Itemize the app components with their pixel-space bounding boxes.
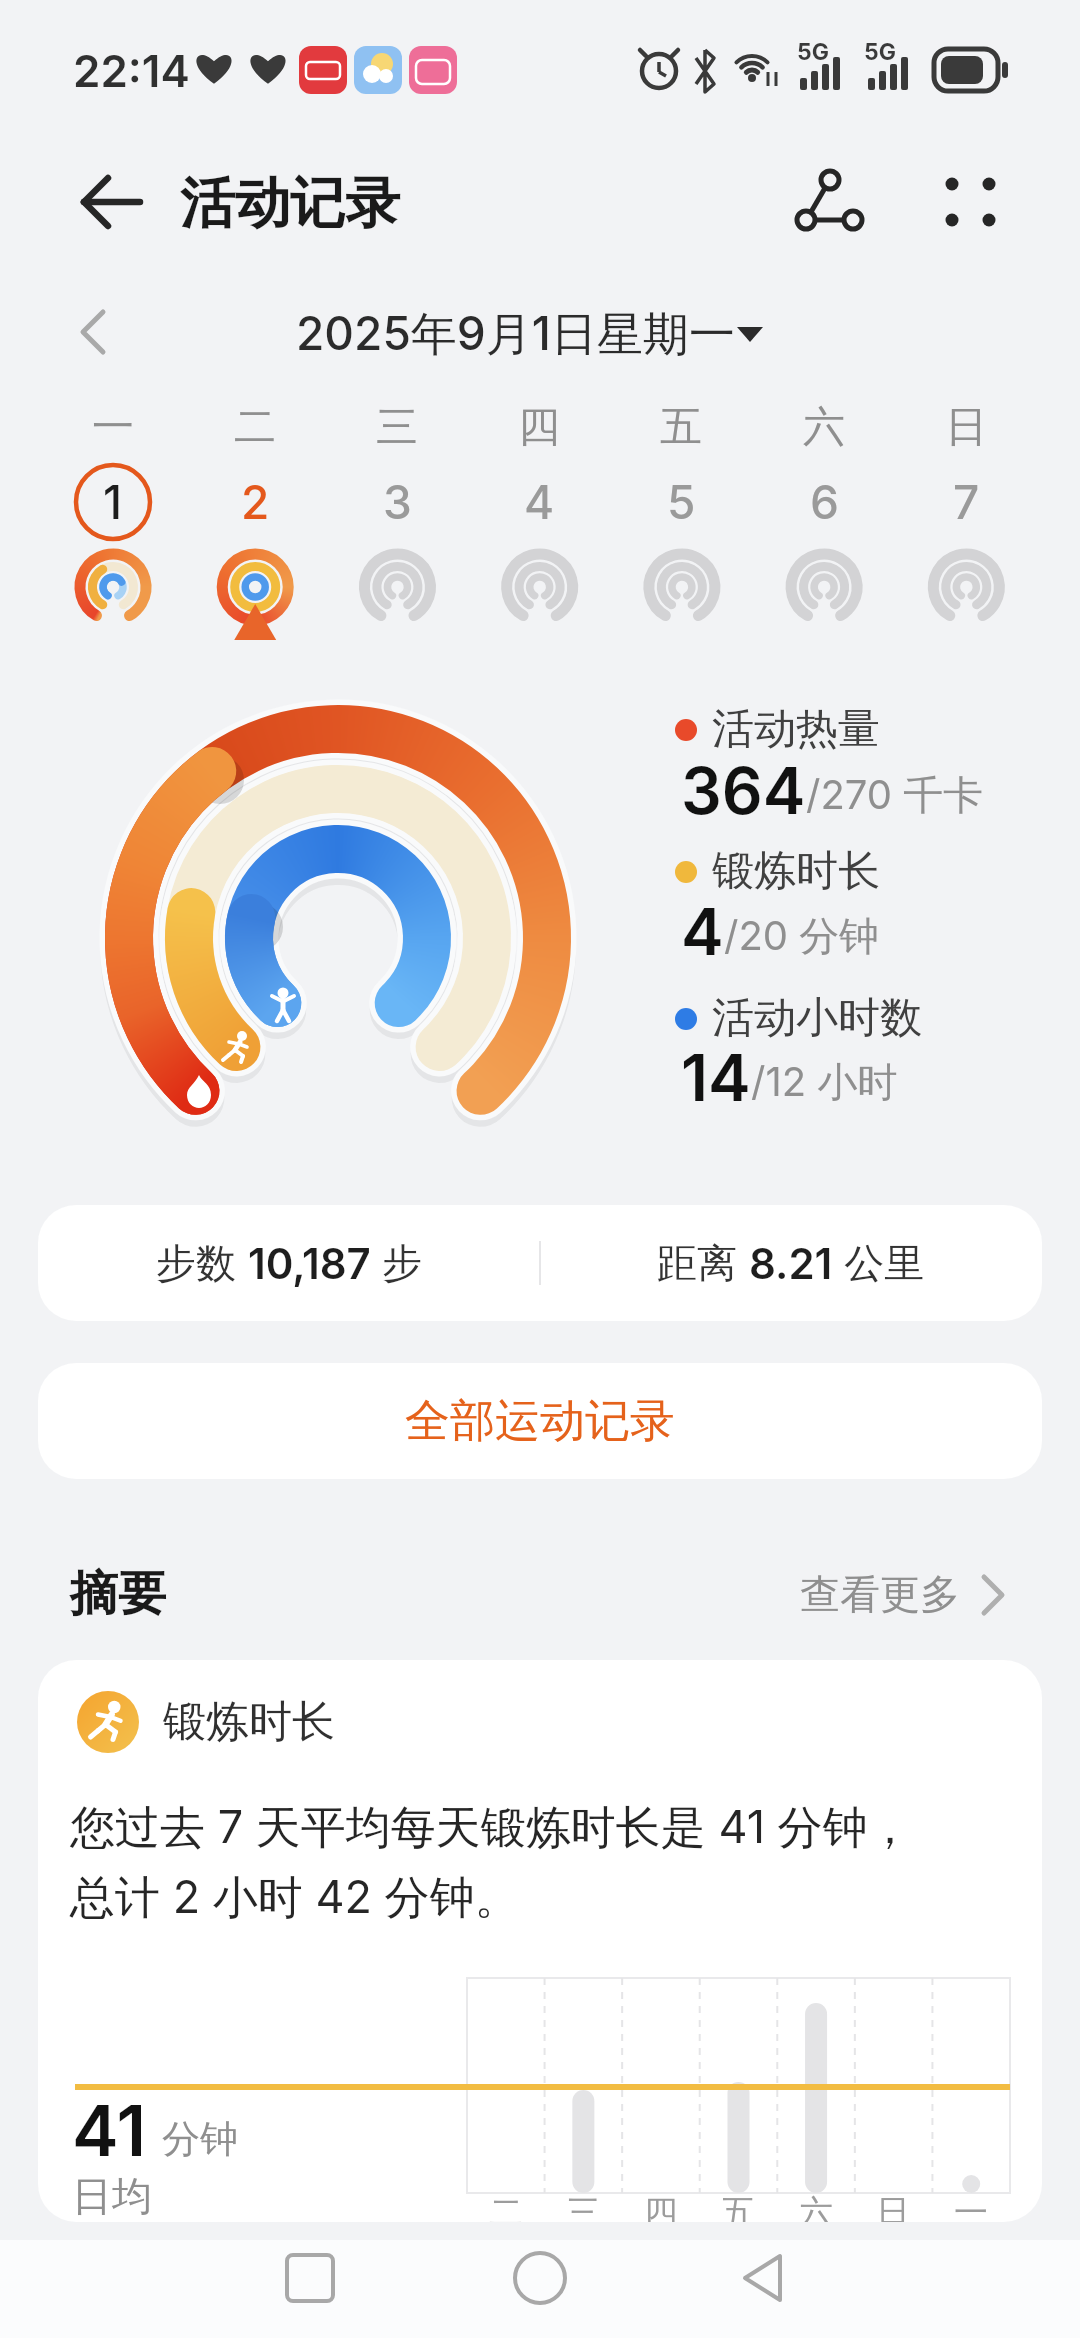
staticText: 二 [489, 2191, 523, 2222]
button[interactable] [38, 1363, 1042, 1479]
staticText: 日 [876, 2191, 910, 2222]
button[interactable] [58, 400, 168, 640]
staticText: 步数 [156, 1238, 248, 1289]
staticText: 二 [234, 401, 276, 454]
staticText: 2 [241, 474, 270, 530]
staticText: 5G [797, 38, 829, 66]
staticText: 五 [721, 2191, 755, 2222]
staticText: 5 [667, 474, 696, 530]
staticText: 41 [72, 2088, 146, 2173]
staticText: 8.21 [749, 1238, 833, 1289]
staticText: 距离 [657, 1238, 749, 1289]
staticText: 公里 [833, 1238, 925, 1289]
staticText: 步 [371, 1238, 423, 1289]
staticText: 364 [681, 752, 806, 829]
staticText: 一 [954, 2191, 988, 2222]
staticText: 6 [810, 474, 839, 530]
staticText: 六 [803, 401, 845, 454]
staticText: 活动热量 [712, 703, 880, 756]
staticText: 1 [103, 474, 123, 530]
staticText: 三 [566, 2191, 600, 2222]
button[interactable] [342, 400, 452, 640]
staticText: 3 [383, 474, 412, 530]
staticText: 您过去 7 天平均每天锻炼时长是 41 分钟， [70, 1799, 913, 1856]
button[interactable] [769, 400, 879, 640]
staticText: 查看更多 [800, 1569, 960, 1619]
staticText: 活动记录 [180, 169, 400, 238]
button[interactable] [484, 400, 594, 640]
button[interactable] [780, 160, 876, 250]
staticText: 六 [799, 2191, 833, 2222]
button[interactable] [38, 1205, 1042, 1321]
staticText: 4 [524, 474, 555, 530]
button[interactable] [200, 400, 310, 640]
staticText: 活动小时数 [712, 992, 922, 1045]
staticText: 5G [864, 38, 896, 66]
staticText: 7 [953, 474, 980, 530]
staticText: /12 小时 [751, 1057, 898, 1108]
staticText: 分钟 [162, 2115, 238, 2163]
staticText: 锻炼时长 [163, 1695, 335, 1749]
staticText: 10,187 [248, 1238, 371, 1289]
staticText: 三 [376, 401, 418, 454]
staticText: 全部运动记录 [405, 1393, 675, 1450]
staticText: 锻炼时长 [712, 845, 880, 898]
staticText: /270 千卡 [806, 770, 984, 821]
staticText: 日 [945, 401, 987, 454]
staticText: 日均 [72, 2171, 152, 2221]
staticText: 摘要 [70, 1564, 166, 1624]
staticText: 14 [681, 1039, 751, 1116]
staticText: 总计 2 小时 42 分钟。 [70, 1869, 520, 1926]
button[interactable] [626, 400, 736, 640]
staticText: 五 [660, 401, 702, 454]
staticText: 2025年9月1日星期一 [296, 305, 735, 363]
staticText: 22:14 [73, 44, 190, 97]
staticText: /20 分钟 [724, 911, 880, 962]
button[interactable] [911, 400, 1021, 640]
staticText: 4 [681, 893, 724, 970]
staticText: 一 [92, 401, 134, 454]
button[interactable]: 2025年9月1日星期一 [270, 284, 760, 384]
button[interactable]: 锻炼时长 [38, 1660, 1042, 2222]
staticText: 四 [518, 401, 560, 454]
button[interactable] [925, 160, 1021, 250]
button[interactable]: 查看更多 [790, 1544, 970, 1644]
button[interactable] [70, 165, 150, 241]
staticText: 四 [644, 2191, 678, 2222]
